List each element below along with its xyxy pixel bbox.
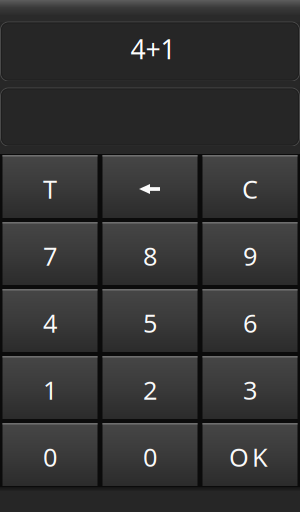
staticText: 5	[143, 306, 157, 340]
staticText: 4+1	[130, 31, 175, 67]
staticText: 8	[143, 239, 157, 273]
button[interactable]: 1	[2, 356, 97, 419]
button[interactable]: 8	[102, 222, 197, 285]
button[interactable]: C	[202, 155, 297, 218]
button[interactable]: T	[2, 155, 97, 218]
button[interactable]: 2	[102, 356, 197, 419]
staticText: 3	[243, 373, 257, 407]
button[interactable]: 6	[202, 289, 297, 352]
staticText: OK	[229, 440, 268, 474]
button[interactable]: 3	[202, 356, 297, 419]
staticText: 9	[243, 239, 257, 273]
staticText: 0	[43, 440, 57, 474]
button[interactable]: 5	[102, 289, 197, 352]
staticText: C	[242, 172, 258, 206]
button[interactable]: Backspace	[102, 155, 197, 218]
staticText: 4	[43, 306, 57, 340]
button[interactable]: 4	[2, 289, 97, 352]
staticText: 1	[43, 373, 57, 407]
staticText: 7	[43, 239, 57, 273]
button[interactable]: 0	[2, 423, 97, 486]
button[interactable]: 0	[102, 423, 197, 486]
staticText: T	[43, 172, 57, 206]
staticText: 2	[143, 373, 157, 407]
button[interactable]: 9	[202, 222, 297, 285]
staticText: 0	[143, 440, 157, 474]
button[interactable]: OK	[202, 423, 297, 486]
button[interactable]: 7	[2, 222, 97, 285]
staticText: 6	[243, 306, 257, 340]
